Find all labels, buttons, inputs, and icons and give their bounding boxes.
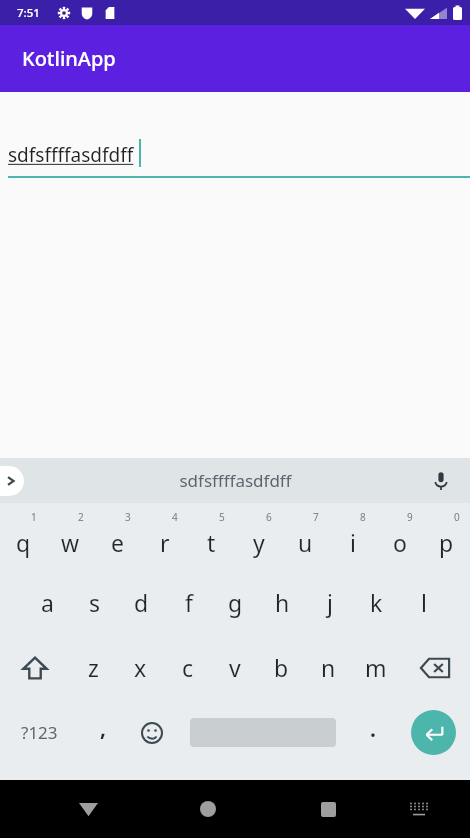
staticText: k bbox=[370, 587, 383, 618]
staticText: 6 bbox=[266, 510, 272, 524]
button[interactable]: ?123 bbox=[0, 700, 78, 765]
button[interactable]: Emoji bbox=[128, 700, 176, 765]
staticText: v bbox=[229, 652, 241, 683]
staticText: p bbox=[439, 527, 454, 558]
button[interactable]: 9 bbox=[376, 505, 423, 570]
button[interactable]: Shift bbox=[0, 635, 70, 700]
staticText: 3 bbox=[125, 510, 131, 524]
button[interactable]: j bbox=[306, 570, 353, 635]
staticText: w bbox=[61, 527, 80, 558]
button[interactable]: 6 bbox=[235, 505, 282, 570]
staticText: z bbox=[88, 652, 99, 683]
staticText: i bbox=[350, 527, 356, 558]
staticText: u bbox=[298, 527, 313, 558]
button[interactable]: x bbox=[117, 635, 164, 700]
staticText: 1 bbox=[31, 510, 37, 524]
button[interactable]: 3 bbox=[94, 505, 141, 570]
staticText: 5 bbox=[219, 510, 225, 524]
button[interactable]: Back bbox=[62, 783, 114, 835]
staticText: x bbox=[134, 652, 147, 683]
button[interactable]: Switch keyboard bbox=[395, 785, 443, 833]
button[interactable]: Enter bbox=[396, 700, 470, 765]
button[interactable]: Recent apps bbox=[302, 783, 354, 835]
staticText: n bbox=[321, 652, 336, 683]
button[interactable]: s bbox=[71, 570, 118, 635]
staticText: t bbox=[207, 527, 216, 558]
staticText: m bbox=[365, 652, 387, 683]
staticText: sdfsffffasdfdff bbox=[8, 142, 134, 168]
staticText: 7 bbox=[313, 510, 319, 524]
button[interactable]: 7 bbox=[282, 505, 329, 570]
staticText: g bbox=[228, 587, 243, 618]
staticText: h bbox=[275, 587, 290, 618]
staticText: 8 bbox=[360, 510, 366, 524]
button[interactable]: 5 bbox=[188, 505, 235, 570]
button[interactable]: b bbox=[258, 635, 305, 700]
button[interactable]: d bbox=[118, 570, 165, 635]
staticText: 4 bbox=[172, 510, 178, 524]
button[interactable]: . bbox=[350, 700, 396, 765]
staticText: , bbox=[100, 714, 106, 743]
button[interactable]: v bbox=[211, 635, 258, 700]
button[interactable]: Backspace bbox=[399, 635, 470, 700]
staticText: f bbox=[185, 587, 193, 618]
staticText: KotlinApp bbox=[22, 45, 116, 72]
button[interactable]: 0 bbox=[423, 505, 470, 570]
staticText: b bbox=[274, 652, 289, 683]
staticText: 0 bbox=[454, 510, 460, 524]
staticText: 2 bbox=[78, 510, 84, 524]
button[interactable]: h bbox=[259, 570, 306, 635]
button[interactable]: 2 bbox=[47, 505, 94, 570]
staticText: a bbox=[41, 587, 54, 618]
staticText: q bbox=[16, 527, 31, 558]
staticText: 9 bbox=[407, 510, 413, 524]
button[interactable]: k bbox=[353, 570, 400, 635]
staticText: r bbox=[160, 527, 170, 558]
button[interactable]: g bbox=[212, 570, 259, 635]
button[interactable]: Voice input bbox=[424, 464, 458, 498]
staticText: l bbox=[421, 587, 427, 618]
button[interactable]: More suggestions bbox=[0, 466, 24, 496]
staticText: ?123 bbox=[21, 721, 58, 744]
button[interactable]: f bbox=[165, 570, 212, 635]
staticText: c bbox=[182, 652, 194, 683]
button[interactable]: sdfsffffasdfdff bbox=[179, 469, 292, 492]
staticText: s bbox=[89, 587, 101, 618]
staticText: j bbox=[327, 587, 333, 618]
button[interactable]: , bbox=[78, 700, 128, 765]
button[interactable]: n bbox=[305, 635, 352, 700]
button[interactable]: z bbox=[70, 635, 117, 700]
button[interactable]: m bbox=[352, 635, 399, 700]
staticText: y bbox=[253, 527, 265, 558]
button[interactable]: 4 bbox=[141, 505, 188, 570]
staticText: e bbox=[111, 527, 124, 558]
button[interactable]: Home bbox=[182, 783, 234, 835]
button[interactable]: c bbox=[164, 635, 211, 700]
button[interactable]: sdfsffffasdfdff bbox=[0, 92, 470, 187]
staticText: d bbox=[134, 587, 149, 618]
staticText: o bbox=[393, 527, 407, 558]
button[interactable]: 1 bbox=[0, 505, 47, 570]
staticText: . bbox=[370, 715, 376, 744]
button[interactable]: 8 bbox=[329, 505, 376, 570]
button[interactable]: l bbox=[400, 570, 447, 635]
staticText: 7:51 bbox=[17, 5, 40, 21]
button[interactable]: a bbox=[23, 570, 71, 635]
